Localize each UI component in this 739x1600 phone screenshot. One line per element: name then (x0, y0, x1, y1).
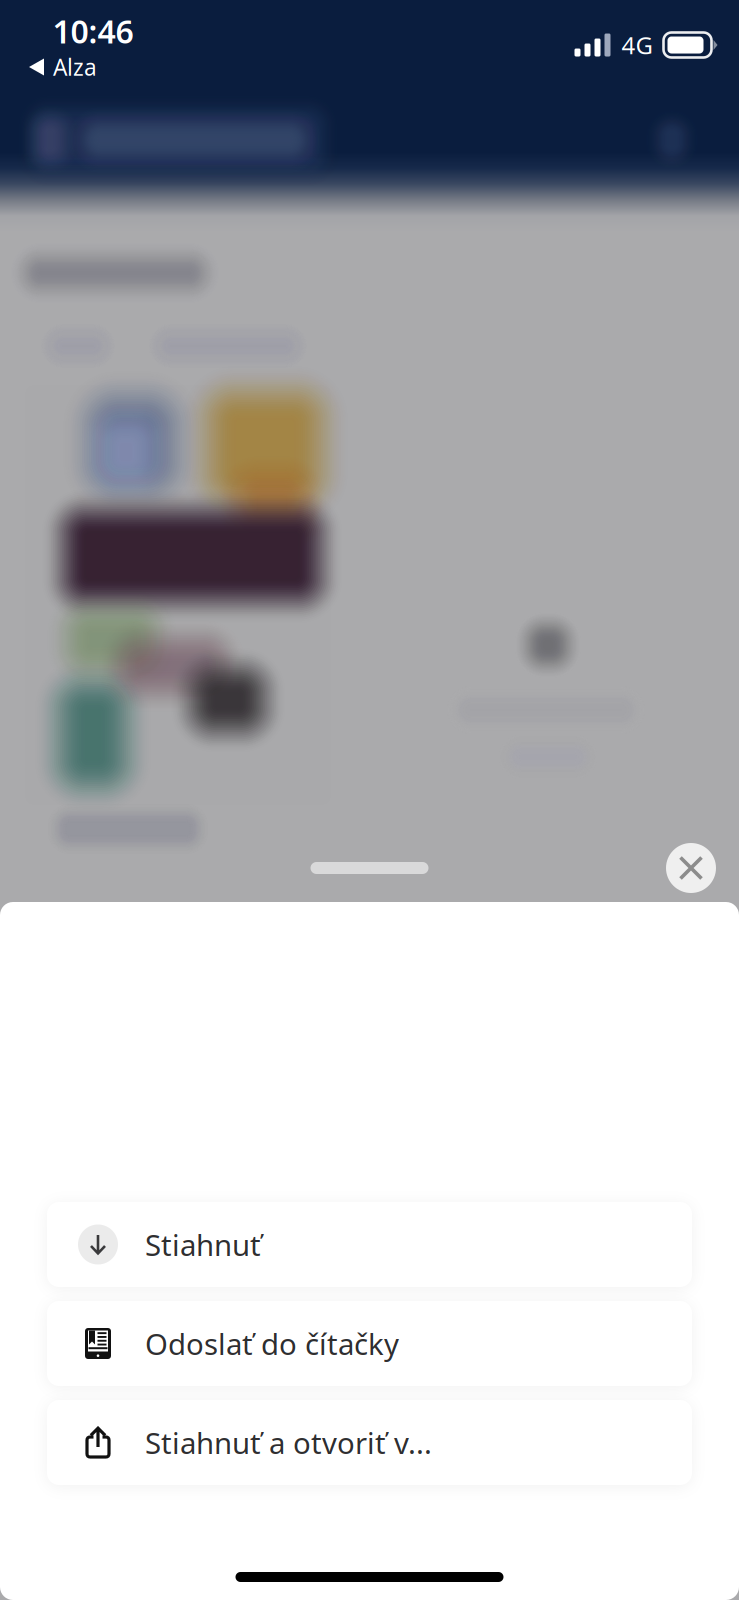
staticText: Odoslať do čítačky (145, 1324, 399, 1363)
staticText: Stiahnuť (145, 1225, 261, 1264)
staticText: 4G (621, 29, 652, 61)
button[interactable]: Alza (5, 46, 109, 88)
staticText: 10:46 (52, 10, 133, 52)
staticText: Alza (53, 52, 97, 82)
button[interactable]: Stiahnuť a otvoriť v... (47, 1400, 692, 1485)
button[interactable]: Stiahnuť (47, 1202, 692, 1287)
button[interactable]: Close (666, 843, 716, 893)
button[interactable]: Odoslať do čítačky (47, 1301, 692, 1386)
staticText: Stiahnuť a otvoriť v... (145, 1423, 432, 1462)
